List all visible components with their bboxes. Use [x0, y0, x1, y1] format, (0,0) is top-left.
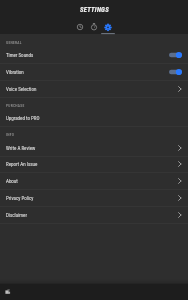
staticText: Write A Review [6, 145, 36, 151]
staticText: Voice Selection [6, 86, 37, 92]
button[interactable]: Privacy Policy [0, 190, 188, 207]
staticText: Report An Issue [6, 161, 38, 167]
staticText: Privacy Policy [6, 195, 34, 201]
staticText: GENERAL [6, 41, 22, 45]
staticText: Disclaimer [6, 212, 27, 218]
button[interactable]: Settings [101, 18, 115, 34]
button[interactable]: Alarm [73, 18, 87, 34]
button[interactable]: Report An Issue [0, 156, 188, 173]
staticText: Vibration [6, 69, 24, 75]
button[interactable]: Disclaimer [0, 207, 188, 224]
staticText: INFO [6, 133, 15, 137]
button[interactable]: Timer [87, 18, 101, 34]
staticText: SETTINGS [80, 6, 109, 14]
staticText: About [6, 178, 18, 184]
button[interactable]: Voice Selection [0, 81, 188, 98]
staticText: Timer Sounds [6, 52, 34, 58]
button[interactable]: About [0, 173, 188, 190]
staticText: PURCHASE [6, 104, 25, 108]
button[interactable]: Timer Sounds [0, 47, 188, 64]
button[interactable]: Write A Review [0, 140, 188, 157]
button[interactable]: Vibration [0, 64, 188, 81]
button[interactable]: Back [2, 286, 14, 298]
staticText: Upgraded to PRO [6, 115, 40, 121]
button[interactable]: Upgraded to PRO [0, 110, 188, 127]
